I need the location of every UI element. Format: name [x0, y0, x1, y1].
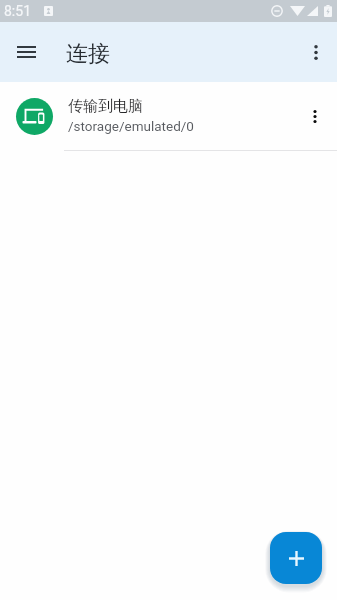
- button[interactable]: More options: [296, 32, 336, 72]
- staticText: /storage/emulated/0: [68, 118, 194, 134]
- button[interactable]: Item options: [295, 96, 335, 136]
- button[interactable]: Open navigation drawer: [6, 32, 46, 72]
- button[interactable]: Add: [270, 532, 322, 584]
- staticText: 连接: [66, 40, 110, 68]
- staticText: 8:51: [4, 3, 31, 19]
- staticText: 传输到电脑: [68, 97, 143, 116]
- button[interactable]: 传输到电脑: [0, 82, 337, 150]
